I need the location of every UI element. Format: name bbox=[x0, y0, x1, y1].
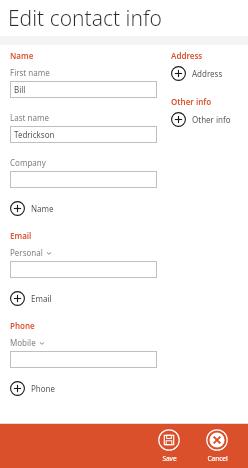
staticText: Email bbox=[10, 230, 32, 241]
button[interactable]: Cancel bbox=[200, 427, 234, 465]
staticText: Address bbox=[171, 50, 203, 61]
button[interactable] bbox=[10, 261, 157, 278]
staticText: Company bbox=[10, 157, 46, 168]
staticText: Name bbox=[10, 50, 34, 61]
button[interactable]: Address bbox=[171, 65, 242, 82]
staticText: Phone bbox=[31, 383, 56, 394]
button[interactable] bbox=[10, 171, 157, 188]
button[interactable]: Phone bbox=[10, 380, 157, 397]
staticText: Cancel bbox=[207, 454, 228, 463]
staticText: Other info bbox=[192, 114, 231, 125]
staticText: Phone bbox=[10, 320, 35, 331]
staticText: Personal bbox=[10, 247, 43, 258]
staticText: Tedrickson bbox=[14, 129, 55, 140]
staticText: Last name bbox=[10, 112, 49, 123]
button[interactable]: Save bbox=[152, 427, 186, 465]
staticText: Address bbox=[192, 68, 223, 79]
staticText: Name bbox=[31, 203, 54, 214]
button[interactable] bbox=[10, 351, 157, 368]
button[interactable]: Email bbox=[10, 290, 157, 307]
button[interactable]: Name bbox=[10, 200, 157, 217]
button[interactable]: Bill bbox=[10, 81, 157, 98]
button[interactable]: Other info bbox=[171, 111, 242, 128]
staticText: Email bbox=[31, 293, 52, 304]
staticText: First name bbox=[10, 67, 50, 78]
staticText: Mobile bbox=[10, 337, 36, 348]
staticText: Save bbox=[162, 454, 177, 463]
staticText: Bill bbox=[14, 84, 26, 95]
staticText: Edit contact info bbox=[8, 4, 162, 33]
button[interactable]: Tedrickson bbox=[10, 126, 157, 143]
staticText: Other info bbox=[171, 96, 212, 107]
